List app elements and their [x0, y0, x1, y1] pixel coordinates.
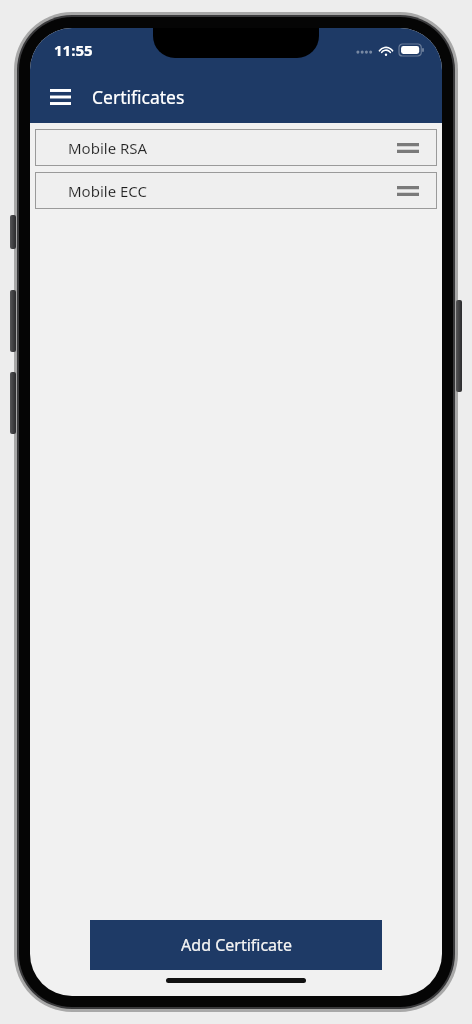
button[interactable]: Mobile RSA [35, 129, 437, 166]
button[interactable]: Mobile ECC [35, 172, 437, 209]
button[interactable]: Reorder Mobile RSA [393, 133, 423, 163]
staticText: 11:55 [54, 40, 93, 60]
button[interactable]: Open navigation menu [38, 75, 82, 119]
staticText: Certificates [92, 85, 185, 109]
staticText: Mobile ECC [68, 181, 148, 201]
button[interactable]: Add Certificate [90, 920, 382, 970]
staticText: Add Certificate [181, 934, 292, 956]
staticText: Mobile RSA [68, 138, 148, 158]
button[interactable]: Reorder Mobile ECC [393, 176, 423, 206]
